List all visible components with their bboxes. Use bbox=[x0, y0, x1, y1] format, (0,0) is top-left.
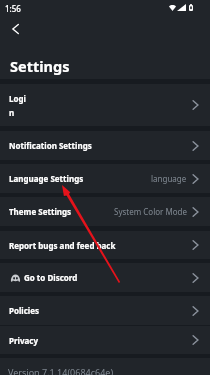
staticText: language bbox=[151, 173, 187, 184]
button[interactable]: Back bbox=[6, 19, 25, 38]
button[interactable]: Policies bbox=[0, 296, 210, 325]
staticText: Privacy bbox=[9, 335, 38, 346]
staticText: Version 7.1.14(0684c64e) bbox=[8, 366, 114, 375]
button[interactable]: Go to Discord bbox=[0, 263, 210, 292]
staticText: Language Settings bbox=[9, 173, 84, 184]
staticText: System Color Mode bbox=[114, 206, 187, 217]
button[interactable]: Login bbox=[0, 84, 210, 126]
staticText: Login bbox=[9, 93, 28, 119]
staticText: Policies bbox=[9, 305, 40, 316]
staticText: Go to Discord bbox=[24, 272, 78, 283]
staticText: Report bugs and feed back bbox=[9, 240, 116, 251]
staticText: 1:56 bbox=[5, 3, 21, 14]
button[interactable]: Privacy bbox=[0, 326, 210, 354]
button[interactable]: Language Settings bbox=[0, 164, 210, 193]
staticText: Theme Settings bbox=[9, 206, 72, 217]
staticText: Notification Settings bbox=[9, 140, 92, 151]
staticText: Settings bbox=[10, 56, 70, 76]
button[interactable]: Notification Settings bbox=[0, 131, 210, 160]
button[interactable]: Report bugs and feed back bbox=[0, 231, 210, 259]
button[interactable]: Theme Settings bbox=[0, 197, 210, 226]
